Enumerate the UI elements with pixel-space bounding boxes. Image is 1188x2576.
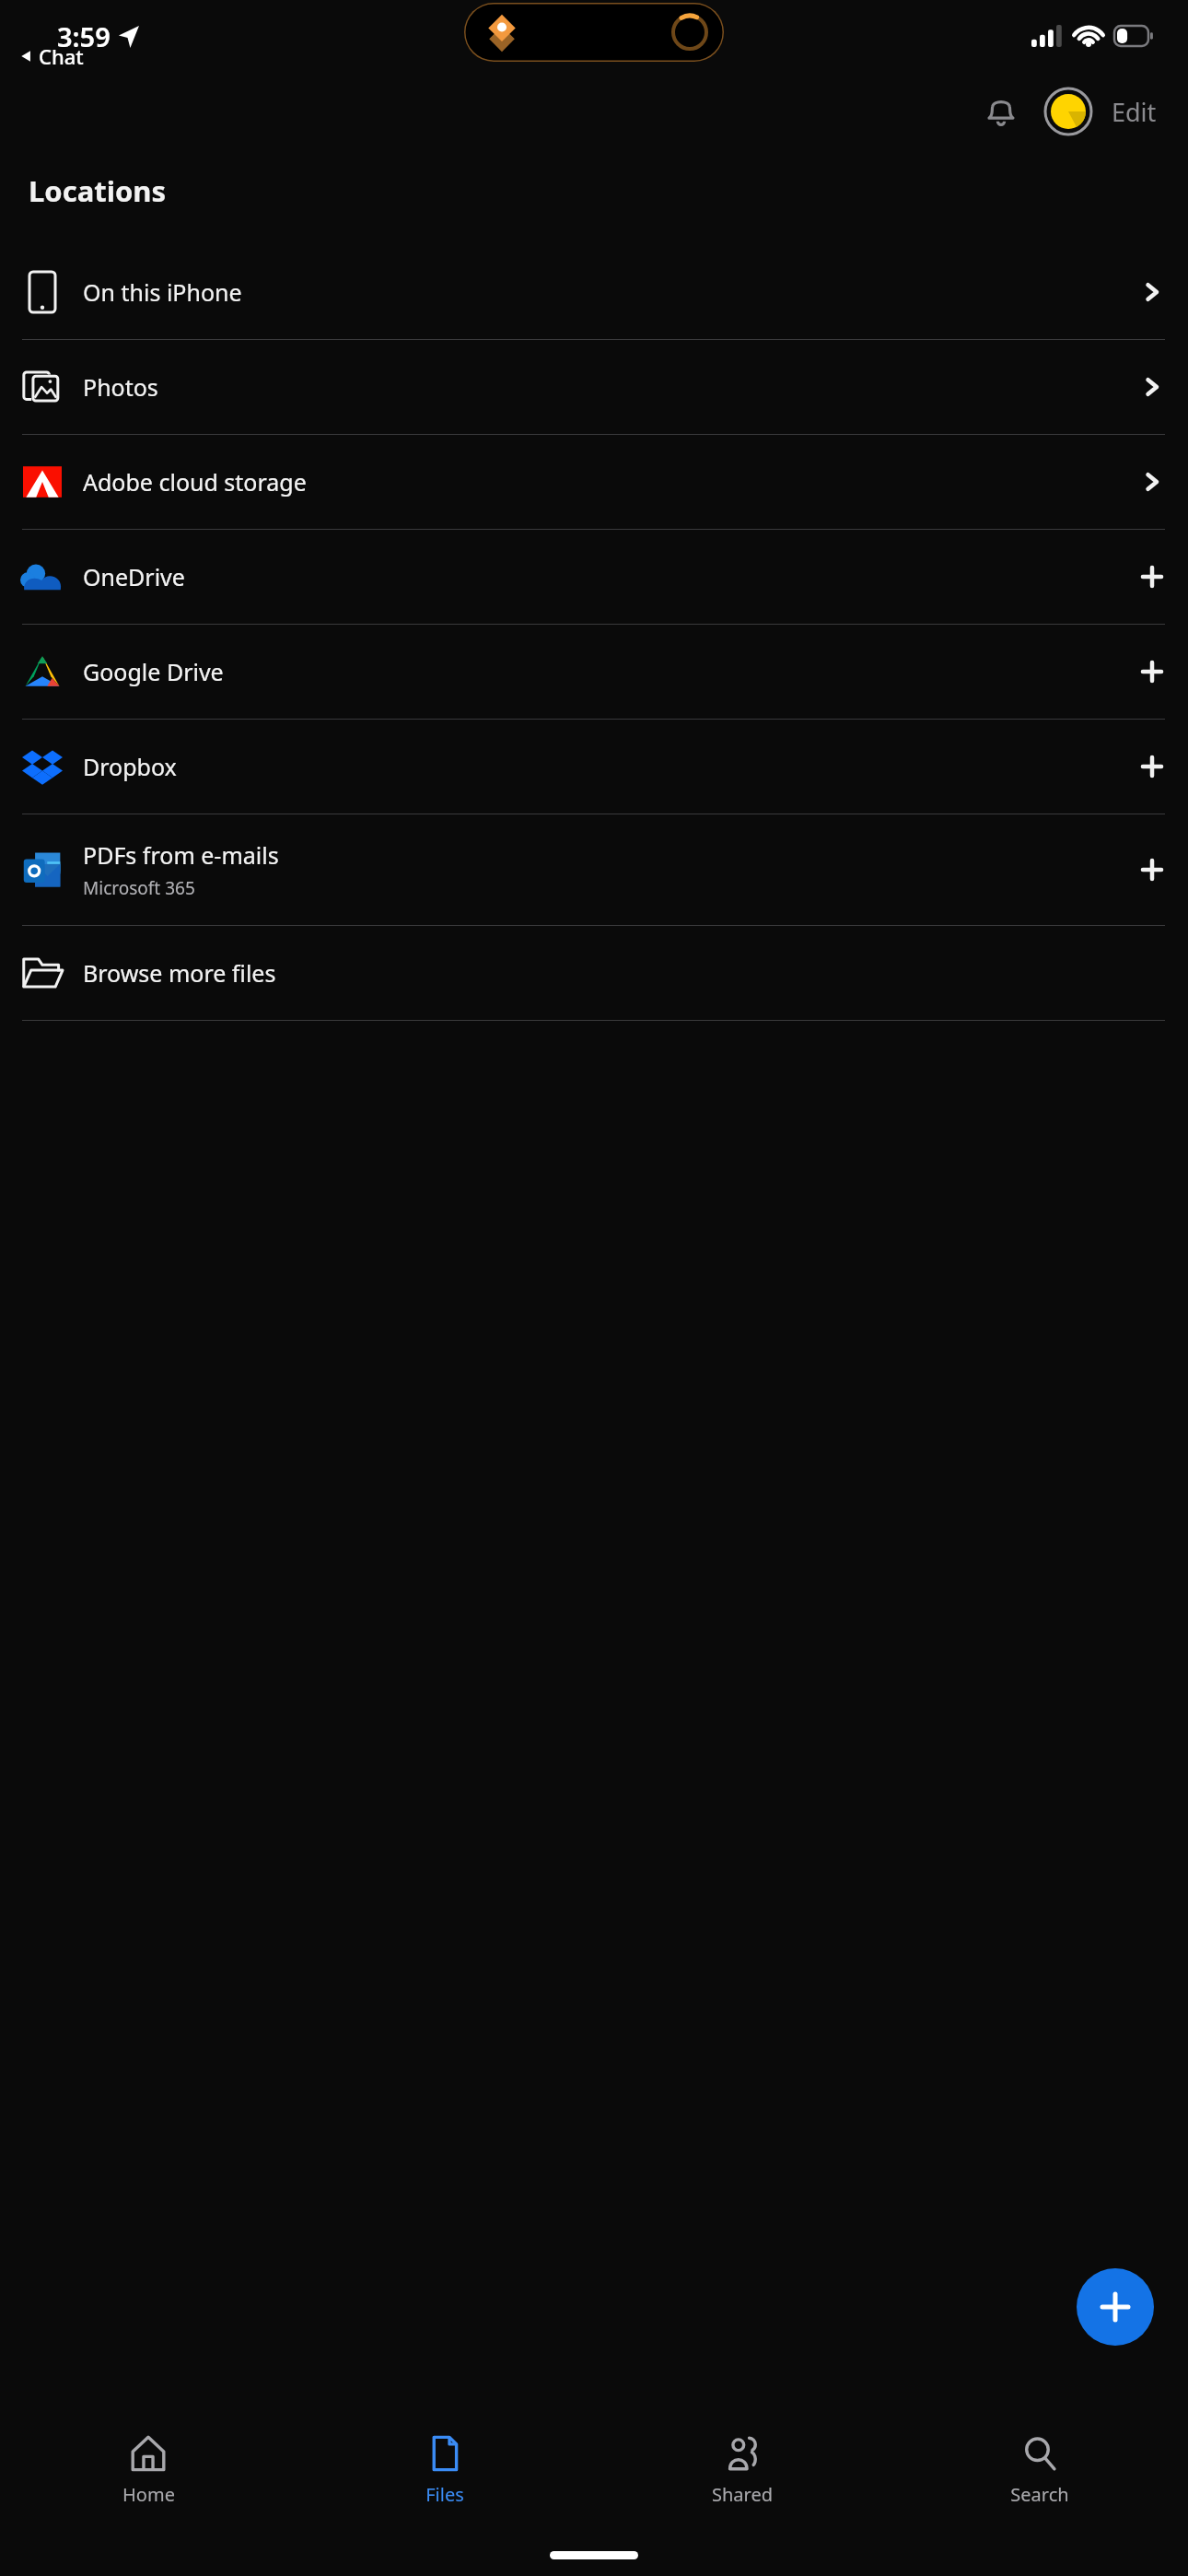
- button[interactable]: On this iPhone: [0, 245, 1188, 339]
- staticText: Search: [1010, 2482, 1069, 2507]
- staticText: Adobe cloud storage: [83, 466, 307, 498]
- button[interactable]: Dropbox: [0, 720, 1188, 814]
- staticText: Microsoft 365: [83, 876, 195, 900]
- staticText: Browse more files: [83, 957, 276, 989]
- other: Add: [1139, 564, 1165, 590]
- staticText: Home: [122, 2482, 175, 2507]
- staticText: Chat: [39, 42, 84, 70]
- button[interactable]: Home: [0, 2412, 297, 2534]
- button[interactable]: Files: [297, 2412, 593, 2534]
- staticText: On this iPhone: [83, 276, 242, 308]
- other: Add: [1139, 857, 1165, 883]
- button[interactable]: Create: [1077, 2268, 1154, 2346]
- button[interactable]: Edit: [1104, 84, 1164, 140]
- staticText: PDFs from e-mails: [83, 839, 279, 871]
- button[interactable]: Search: [891, 2412, 1188, 2534]
- button[interactable]: OneDrive: [0, 530, 1188, 624]
- staticText: Locations: [29, 171, 167, 210]
- other: Open: [1139, 374, 1165, 400]
- staticText: Shared: [712, 2482, 773, 2507]
- button[interactable]: Google Drive: [0, 625, 1188, 719]
- other: Open: [1139, 469, 1165, 495]
- button[interactable]: Adobe cloud storage: [0, 435, 1188, 529]
- button[interactable]: Profile: [1042, 85, 1095, 138]
- staticText: 3:59: [57, 18, 111, 54]
- button[interactable]: PDFs from e-mails: [0, 814, 1188, 925]
- other: Add: [1139, 659, 1165, 685]
- button[interactable]: Browse more files: [0, 926, 1188, 1020]
- staticText: Edit: [1112, 95, 1157, 129]
- other: Open: [1139, 279, 1165, 305]
- staticText: Dropbox: [83, 751, 177, 782]
- staticText: Files: [425, 2482, 464, 2507]
- staticText: Google Drive: [83, 656, 224, 687]
- button[interactable]: Notifications: [972, 82, 1031, 141]
- button[interactable]: Photos: [0, 340, 1188, 434]
- staticText: Photos: [83, 371, 158, 403]
- button[interactable]: Shared: [593, 2412, 891, 2534]
- staticText: OneDrive: [83, 561, 185, 592]
- other: Add: [1139, 754, 1165, 779]
